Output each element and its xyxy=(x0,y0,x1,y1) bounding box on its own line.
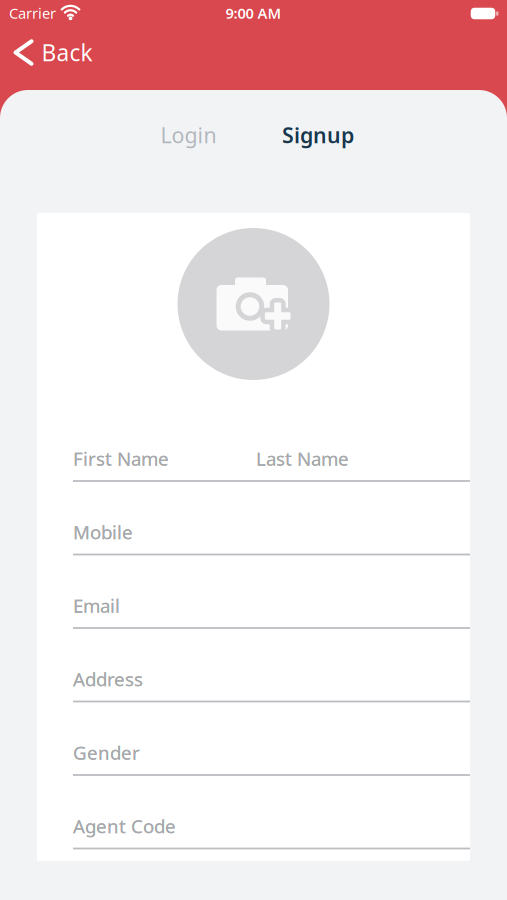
staticText: Gender xyxy=(73,740,140,765)
staticText: Mobile xyxy=(73,520,133,544)
button[interactable]: Add profile photo xyxy=(177,228,329,380)
textField[interactable]: Email xyxy=(73,593,470,618)
staticText: 9:00 AM xyxy=(225,3,281,23)
staticText: Agent Code xyxy=(73,814,176,838)
textField[interactable]: Agent Code xyxy=(73,814,470,838)
staticText: First Name xyxy=(73,446,169,471)
staticText: Email xyxy=(73,593,120,618)
staticText: Login xyxy=(160,121,216,149)
staticText: Last Name xyxy=(256,446,349,471)
button[interactable]: Signup xyxy=(282,121,354,149)
staticText: Last Name xyxy=(256,446,349,471)
staticText: Back xyxy=(41,37,92,67)
staticText: Gender xyxy=(73,740,140,765)
staticText: Address xyxy=(73,667,143,691)
staticText: Address xyxy=(73,667,143,691)
staticText: Agent Code xyxy=(73,814,176,838)
staticText: Carrier xyxy=(9,3,56,23)
staticText: Signup xyxy=(282,121,354,149)
textField[interactable]: Mobile xyxy=(73,520,470,544)
button[interactable]: Login xyxy=(160,121,216,149)
staticText: Email xyxy=(73,593,120,618)
textField[interactable]: First Name xyxy=(73,446,256,471)
textField[interactable]: Last Name xyxy=(256,446,470,471)
staticText: Mobile xyxy=(73,520,133,544)
button[interactable]: Back xyxy=(15,37,92,67)
textField[interactable]: Gender xyxy=(73,740,470,765)
textField[interactable]: Address xyxy=(73,667,470,691)
staticText: First Name xyxy=(73,446,169,471)
